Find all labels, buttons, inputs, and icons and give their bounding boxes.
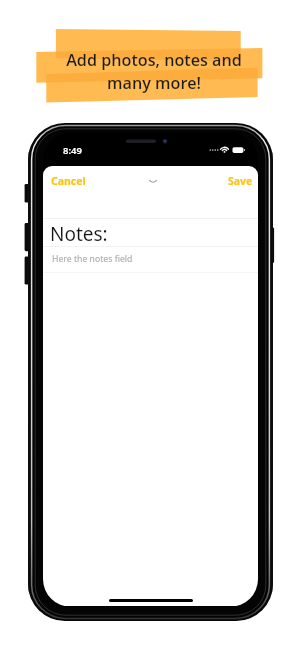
button[interactable]: Collapse	[143, 173, 163, 189]
staticText: Cancel	[51, 174, 86, 188]
staticText: Here the notes field	[52, 253, 133, 265]
button[interactable]: Save	[222, 169, 258, 193]
staticText: 8:49	[63, 144, 82, 157]
button[interactable]: Cancel	[45, 169, 92, 193]
staticText: Save	[228, 174, 253, 188]
staticText: Add photos, notes and many more!	[66, 49, 242, 93]
staticText: Notes:	[50, 221, 108, 247]
